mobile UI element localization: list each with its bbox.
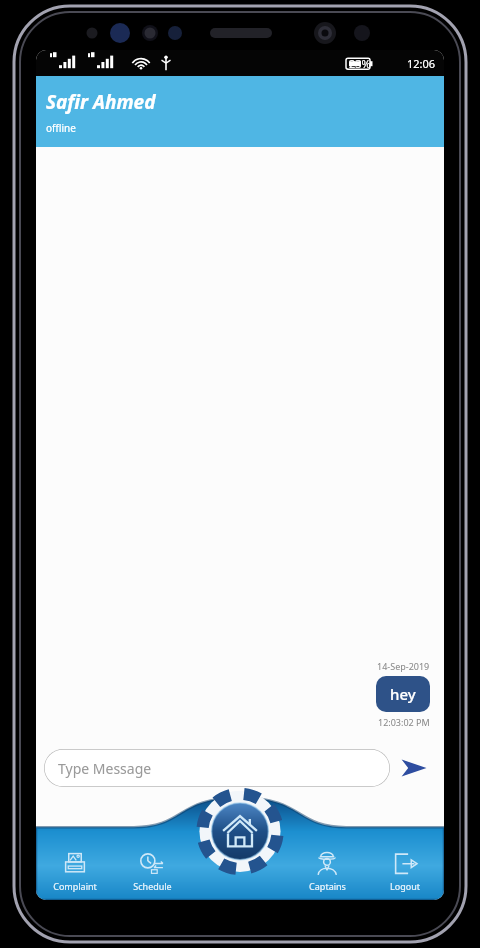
button[interactable]: Captains: [288, 830, 366, 894]
button[interactable]: Send: [390, 740, 436, 796]
staticText: Safir Ahmed: [46, 89, 156, 115]
button[interactable]: hey: [376, 676, 430, 712]
staticText: hey: [390, 684, 416, 704]
staticText: Logout: [390, 880, 420, 892]
staticText: Schedule: [133, 880, 172, 892]
button[interactable]: Complaint: [36, 830, 113, 894]
staticText: Complaint: [53, 880, 97, 892]
staticText: Captains: [309, 880, 346, 892]
staticText: 23%: [349, 56, 371, 71]
staticText: Type Message: [58, 759, 152, 778]
button[interactable]: Logout: [366, 830, 444, 894]
button[interactable]: Home: [201, 798, 279, 876]
staticText: offline: [46, 121, 76, 135]
staticText: 12:03:02 PM: [378, 716, 430, 728]
staticText: 14-Sep-2019: [377, 660, 430, 672]
staticText: 12:06: [407, 56, 436, 71]
button[interactable]: Safir Ahmed: [36, 76, 444, 147]
button[interactable]: Type Message: [44, 749, 390, 787]
button[interactable]: Schedule: [113, 830, 191, 894]
